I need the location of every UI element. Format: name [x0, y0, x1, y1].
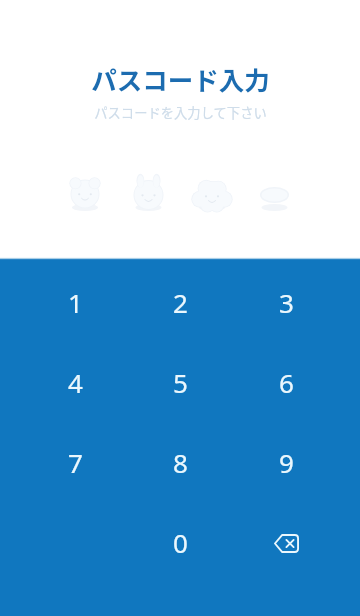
- button[interactable]: 9: [246, 430, 326, 494]
- staticText: 7: [68, 445, 83, 480]
- button[interactable]: 6: [246, 350, 326, 414]
- staticText: 4: [68, 365, 83, 400]
- button[interactable]: Backspace: [246, 511, 326, 575]
- staticText: パスコード入力: [91, 60, 270, 97]
- button[interactable]: 0: [140, 510, 220, 574]
- button[interactable]: 8: [140, 430, 220, 494]
- staticText: 6: [279, 365, 294, 400]
- button[interactable]: 2: [140, 270, 220, 334]
- staticText: 2: [173, 285, 188, 320]
- staticText: 5: [173, 365, 188, 400]
- button[interactable]: 5: [140, 350, 220, 414]
- button[interactable]: 7: [35, 430, 115, 494]
- staticText: 0: [173, 525, 188, 560]
- button[interactable]: 1: [35, 270, 115, 334]
- staticText: 1: [68, 285, 83, 320]
- button[interactable]: 3: [246, 270, 326, 334]
- staticText: パスコードを入力して下さい: [94, 103, 267, 122]
- button[interactable]: 4: [35, 350, 115, 414]
- staticText: 9: [279, 445, 294, 480]
- staticText: 3: [279, 285, 294, 320]
- staticText: 8: [173, 445, 188, 480]
